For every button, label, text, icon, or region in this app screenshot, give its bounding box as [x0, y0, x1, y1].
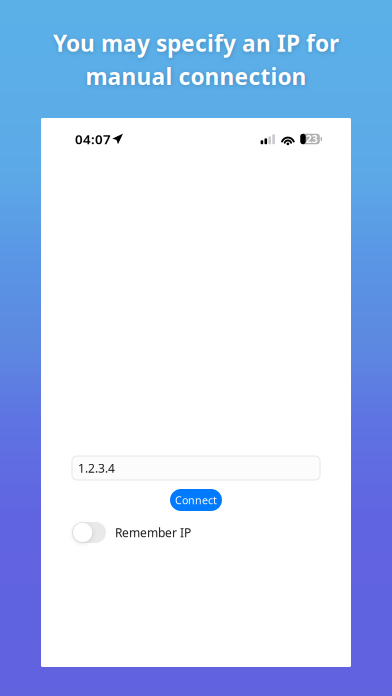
staticText: manual connection: [85, 61, 306, 91]
staticText: Remember IP: [115, 524, 191, 540]
staticText: Connect: [175, 493, 217, 507]
button[interactable]: Remember IP: [72, 522, 106, 543]
button[interactable]: Connect: [170, 489, 222, 511]
staticText: 23: [306, 132, 318, 146]
staticText: You may specify an IP for: [53, 28, 339, 58]
staticText: 04:07: [75, 130, 111, 148]
staticText: 1.2.3.4: [78, 460, 115, 476]
